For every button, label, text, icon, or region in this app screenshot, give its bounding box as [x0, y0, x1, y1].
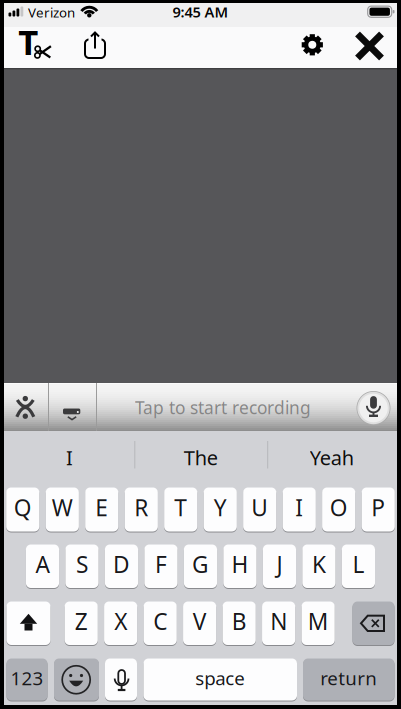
- button[interactable]: space: [143, 658, 297, 700]
- staticText: 9:45 AM: [172, 2, 228, 22]
- button[interactable]: W: [46, 487, 79, 531]
- staticText: C: [153, 606, 167, 636]
- staticText: The: [184, 444, 218, 471]
- staticText: W: [52, 492, 73, 522]
- staticText: return: [320, 666, 377, 690]
- button[interactable]: 123: [6, 658, 47, 700]
- staticText: Z: [75, 606, 88, 636]
- staticText: L: [352, 549, 364, 579]
- button[interactable]: Shift: [6, 601, 50, 645]
- button[interactable]: Share: [81, 27, 109, 61]
- staticText: D: [113, 549, 130, 579]
- button[interactable]: P: [362, 487, 395, 531]
- staticText: O: [330, 492, 348, 522]
- button[interactable]: L: [342, 544, 375, 588]
- staticText: A: [35, 549, 49, 579]
- button[interactable]: F: [144, 544, 178, 588]
- staticText: 123: [10, 666, 43, 690]
- button[interactable]: G: [184, 544, 217, 588]
- button[interactable]: I: [4, 431, 135, 478]
- staticText: N: [270, 606, 287, 636]
- button[interactable]: Q: [6, 487, 39, 531]
- button[interactable]: M: [301, 601, 335, 645]
- button[interactable]: T: [164, 487, 197, 531]
- staticText: Tap to start recording: [135, 396, 311, 419]
- staticText: P: [371, 492, 385, 522]
- button[interactable]: Cut text: [14, 26, 58, 62]
- staticText: T: [174, 492, 187, 522]
- button[interactable]: U: [243, 487, 276, 531]
- staticText: G: [192, 549, 209, 579]
- button[interactable]: Hide keyboard: [50, 383, 94, 431]
- button[interactable]: Start recording: [354, 389, 392, 427]
- button[interactable]: E: [85, 487, 118, 531]
- button[interactable]: return: [303, 658, 394, 700]
- button[interactable]: S: [65, 544, 99, 588]
- button[interactable]: Dictate: [105, 658, 137, 700]
- staticText: R: [134, 492, 148, 522]
- button[interactable]: Settings: [298, 31, 326, 59]
- staticText: B: [232, 606, 247, 636]
- staticText: V: [193, 606, 207, 636]
- staticText: Verizon: [28, 3, 75, 21]
- button[interactable]: X: [104, 601, 137, 645]
- button[interactable]: R: [125, 487, 158, 531]
- button[interactable]: Switch keyboard: [4, 383, 48, 431]
- staticText: F: [155, 549, 167, 579]
- staticText: Q: [14, 492, 32, 522]
- button[interactable]: Z: [65, 601, 98, 645]
- staticText: J: [276, 549, 282, 579]
- button[interactable]: Close: [352, 30, 387, 62]
- button[interactable]: B: [223, 601, 256, 645]
- staticText: K: [312, 549, 326, 579]
- staticText: H: [231, 549, 248, 579]
- button[interactable]: D: [105, 544, 138, 588]
- button[interactable]: The: [135, 431, 267, 478]
- staticText: T: [18, 18, 38, 64]
- button[interactable]: Delete: [352, 601, 394, 645]
- button[interactable]: Y: [204, 487, 237, 531]
- staticText: Y: [214, 492, 227, 522]
- button[interactable]: N: [262, 601, 295, 645]
- staticText: E: [95, 492, 108, 522]
- staticText: space: [195, 666, 245, 690]
- staticText: I: [295, 492, 303, 522]
- button[interactable]: Emoji: [54, 658, 99, 700]
- staticText: X: [114, 606, 127, 636]
- button[interactable]: K: [302, 544, 335, 588]
- button[interactable]: A: [26, 544, 59, 588]
- button[interactable]: C: [144, 601, 177, 645]
- staticText: S: [76, 549, 88, 579]
- button[interactable]: Tap to start recording: [96, 383, 350, 431]
- button[interactable]: O: [322, 487, 355, 531]
- staticText: Yeah: [310, 444, 354, 471]
- button[interactable]: J: [263, 544, 296, 588]
- staticText: U: [251, 492, 268, 522]
- button[interactable]: I: [283, 487, 316, 531]
- button[interactable]: V: [183, 601, 216, 645]
- staticText: M: [308, 606, 329, 636]
- staticText: I: [66, 444, 73, 471]
- button[interactable]: H: [223, 544, 257, 588]
- button[interactable]: Yeah: [267, 431, 397, 478]
